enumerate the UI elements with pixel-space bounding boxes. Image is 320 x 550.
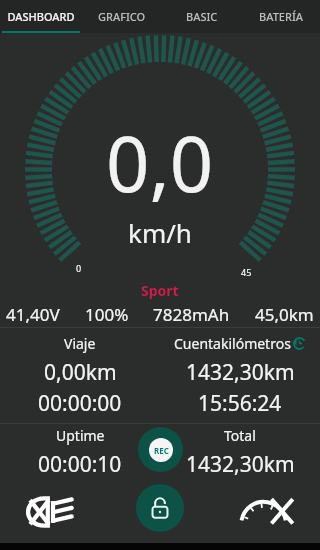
- staticText: BATERÍA: [259, 9, 303, 24]
- staticText: Total: [224, 426, 256, 445]
- button[interactable]: Cuentakilómetros: [160, 328, 320, 423]
- staticText: 45: [241, 266, 252, 278]
- staticText: 1432,30km: [186, 358, 295, 387]
- staticText: DASHBOARD: [7, 9, 75, 24]
- staticText: REC: [154, 445, 169, 456]
- staticText: Viaje: [64, 334, 96, 353]
- staticText: 00:00:10: [38, 450, 122, 479]
- button[interactable]: Record: [138, 427, 183, 472]
- button[interactable]: Viaje: [0, 328, 160, 423]
- button[interactable]: DASHBOARD: [0, 0, 82, 33]
- staticText: Sport: [141, 281, 179, 300]
- staticText: 0: [76, 262, 82, 274]
- staticText: GRAFICO: [98, 9, 146, 24]
- button[interactable]: Cruise control off: [213, 481, 320, 543]
- staticText: 7828mAh: [153, 303, 230, 326]
- staticText: 0,0: [106, 111, 214, 215]
- staticText: 0,00km: [44, 358, 117, 387]
- staticText: 00:00:00: [38, 389, 122, 418]
- button[interactable]: Unlock: [136, 484, 184, 532]
- staticText: km/h: [128, 215, 192, 250]
- staticText: Uptime: [56, 426, 105, 445]
- staticText: BASIC: [186, 9, 218, 24]
- staticText: 45,0km: [255, 303, 314, 326]
- button[interactable]: BASIC: [162, 0, 241, 33]
- staticText: 1432,30km: [186, 450, 295, 479]
- button[interactable]: Headlight off: [0, 481, 106, 543]
- button[interactable]: BATERÍA: [241, 0, 320, 33]
- staticText: 41,40V: [6, 303, 60, 326]
- button[interactable]: GRAFICO: [82, 0, 162, 33]
- staticText: Cuentakilómetros: [174, 334, 291, 353]
- other: Reset odometer: [293, 337, 306, 350]
- staticText: 15:56:24: [198, 389, 282, 418]
- staticText: 100%: [85, 303, 129, 326]
